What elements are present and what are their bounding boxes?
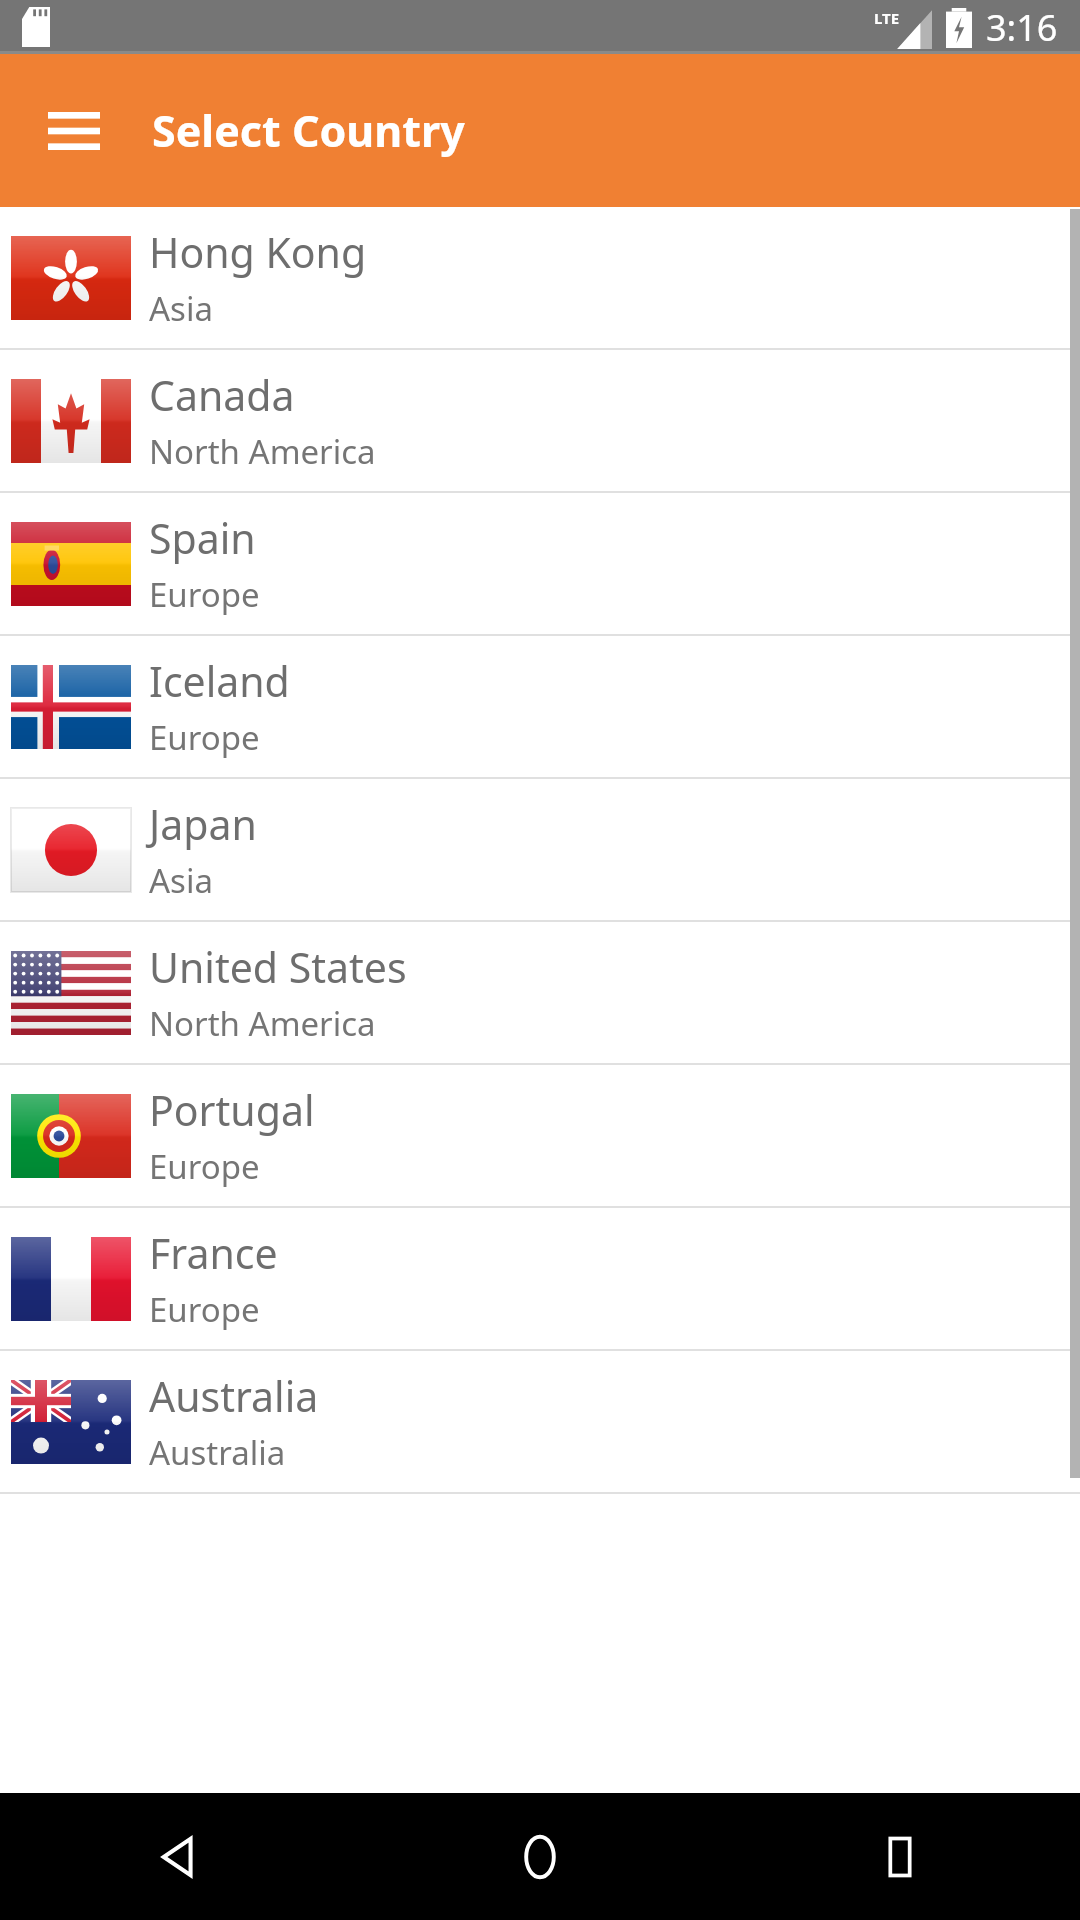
button[interactable]: France bbox=[0, 1208, 1080, 1349]
button[interactable]: Canada bbox=[0, 350, 1080, 491]
staticText: North America bbox=[149, 1001, 376, 1046]
button[interactable]: Back bbox=[110, 1793, 250, 1920]
staticText: Spain bbox=[149, 510, 256, 566]
staticText: 3:16 bbox=[986, 3, 1058, 52]
staticText: Europe bbox=[149, 1144, 260, 1189]
button[interactable]: Japan bbox=[0, 779, 1080, 920]
staticText: Australia bbox=[149, 1368, 319, 1424]
button[interactable]: Open navigation menu bbox=[30, 91, 118, 171]
staticText: Select Country bbox=[152, 101, 465, 160]
staticText: Asia bbox=[149, 286, 213, 331]
staticText: North America bbox=[149, 429, 376, 474]
button[interactable]: Australia bbox=[0, 1351, 1080, 1492]
staticText: Portugal bbox=[149, 1082, 315, 1138]
button[interactable]: Recent apps bbox=[830, 1793, 970, 1920]
button[interactable]: Hong Kong bbox=[0, 207, 1080, 348]
button[interactable]: United States bbox=[0, 922, 1080, 1063]
staticText: Iceland bbox=[149, 653, 290, 709]
staticText: Canada bbox=[149, 367, 295, 423]
staticText: Asia bbox=[149, 858, 213, 903]
staticText: Japan bbox=[149, 796, 257, 852]
button[interactable]: Spain bbox=[0, 493, 1080, 634]
staticText: Europe bbox=[149, 1287, 260, 1332]
staticText: Europe bbox=[149, 715, 260, 760]
button[interactable]: Iceland bbox=[0, 636, 1080, 777]
button[interactable]: Portugal bbox=[0, 1065, 1080, 1206]
button[interactable]: Home bbox=[470, 1793, 610, 1920]
staticText: Europe bbox=[149, 572, 260, 617]
staticText: LTE bbox=[874, 8, 900, 28]
staticText: United States bbox=[149, 939, 407, 995]
staticText: France bbox=[149, 1225, 278, 1281]
staticText: Australia bbox=[149, 1430, 286, 1475]
staticText: Hong Kong bbox=[149, 224, 367, 280]
